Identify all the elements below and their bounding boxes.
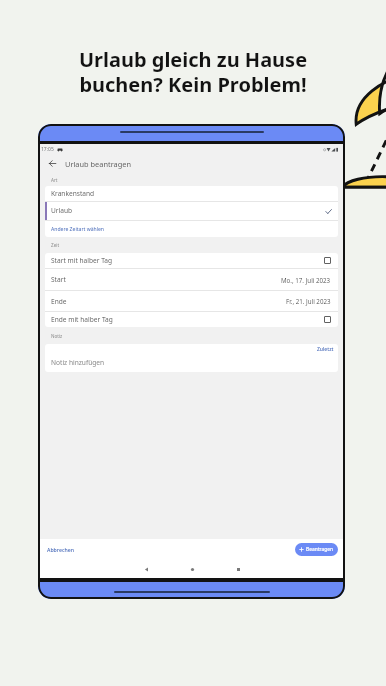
button[interactable]: Übersicht [215,560,261,578]
staticText: Mo., 17. Juli 2023 [281,276,331,284]
staticText: Krankenstand [51,189,95,198]
button[interactable]: Andere Zeitart wählen [45,221,338,237]
button[interactable]: Zurück [123,560,169,578]
staticText: Zeit [51,242,60,248]
button[interactable]: Start [45,269,338,290]
button[interactable]: Zuletzt [45,344,338,372]
button[interactable]: Krankenstand [45,186,338,201]
staticText: Start [51,275,66,284]
button[interactable]: Startbildschirm [169,560,215,578]
staticText: Notiz hinzufügen [51,358,105,367]
staticText: Ende [51,297,67,306]
button[interactable]: Ende [45,291,338,311]
staticText: Ende mit halber Tag [51,315,113,324]
staticText: Zuletzt [317,346,334,353]
staticText: Art [51,177,58,183]
staticText: Andere Zeitart wählen [51,226,105,233]
button[interactable]: Beantragen [295,543,338,556]
staticText: Beantragen [306,546,333,553]
button[interactable]: Start mit halber Tag [45,253,338,268]
button[interactable]: Ende mit halber Tag [45,312,338,327]
staticText: Notiz [51,333,63,339]
staticText: Urlaub gleich zu Hause buchen? Kein Prob… [0,46,386,98]
button[interactable]: Zurück [46,157,59,170]
staticText: Urlaub [51,206,73,215]
staticText: Start mit halber Tag [51,256,113,265]
staticText: Urlaub beantragen [65,159,131,169]
staticText: Fr., 21. Juli 2023 [286,297,331,305]
button[interactable]: Abbrechen [45,544,76,555]
staticText: Abbrechen [47,546,74,553]
button[interactable]: Urlaub [45,202,338,219]
staticText: 17:05 [41,146,54,153]
